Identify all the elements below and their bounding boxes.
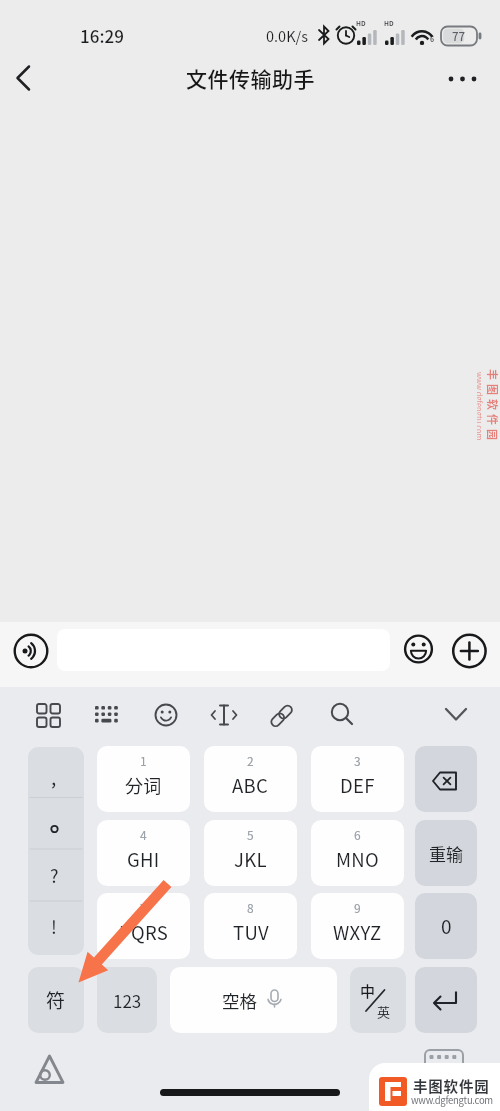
staticText: HD [384, 18, 394, 27]
staticText: 中 [360, 980, 376, 1002]
button[interactable] [404, 634, 436, 666]
staticText: 3 [354, 752, 361, 769]
staticText: MNO [336, 846, 380, 873]
staticText: 符 [46, 986, 66, 1014]
staticText: 8 [247, 899, 254, 916]
staticText: 123 [113, 988, 142, 1013]
staticText: JKL [234, 846, 267, 873]
staticText: TUV [233, 919, 269, 946]
button[interactable] [148, 697, 188, 733]
button[interactable] [97, 820, 190, 886]
button[interactable] [86, 697, 126, 733]
staticText: HD [356, 18, 366, 27]
staticText: 重输 [429, 841, 463, 866]
button[interactable] [311, 893, 404, 959]
button[interactable] [8, 60, 48, 96]
button[interactable] [204, 893, 297, 959]
staticText: ABC [232, 772, 269, 799]
button[interactable] [415, 746, 477, 812]
staticText: PQRS [119, 919, 169, 946]
staticText: 7 [140, 899, 147, 916]
button[interactable] [97, 967, 157, 1033]
button[interactable] [438, 60, 486, 96]
staticText: 英 [377, 1002, 391, 1021]
button[interactable] [97, 746, 190, 812]
staticText: www.dgfengtu.com [411, 1093, 493, 1107]
button[interactable] [311, 746, 404, 812]
staticText: 9 [354, 899, 361, 916]
staticText: 77 [452, 28, 466, 45]
staticText: 16:29 [80, 23, 124, 47]
button[interactable] [28, 747, 84, 955]
button[interactable] [28, 697, 68, 733]
button[interactable] [323, 697, 363, 733]
staticText: DEF [340, 772, 375, 799]
button[interactable] [204, 746, 297, 812]
button[interactable] [436, 697, 480, 733]
staticText: 0.0K/s [266, 25, 308, 45]
staticText: ? [50, 862, 59, 888]
staticText: 分词 [125, 772, 162, 798]
staticText: GHI [127, 846, 160, 873]
staticText: 文件传输助手 [186, 63, 315, 93]
button[interactable] [14, 634, 46, 666]
staticText: 空格 [222, 988, 257, 1013]
staticText: 2 [247, 752, 254, 769]
staticText: 0 [441, 912, 452, 940]
staticText: 丰图软件园 [413, 1075, 490, 1095]
button[interactable] [415, 893, 477, 959]
button[interactable] [28, 967, 84, 1033]
button[interactable] [263, 697, 303, 733]
staticText: 丰图软件园 [485, 369, 500, 444]
button[interactable] [97, 893, 190, 959]
staticText: 6 [430, 34, 435, 44]
button[interactable] [350, 967, 406, 1033]
button[interactable] [170, 967, 337, 1033]
staticText: www.dgfengtu.com [477, 372, 485, 441]
button[interactable] [204, 820, 297, 886]
staticText: 6 [354, 826, 361, 843]
staticText: 1 [140, 752, 147, 769]
staticText: ! [51, 913, 57, 939]
staticText: WXYZ [333, 919, 382, 946]
staticText: 4 [140, 826, 147, 843]
button[interactable] [415, 967, 477, 1033]
button[interactable] [311, 820, 404, 886]
staticText: 5 [247, 826, 254, 843]
button[interactable] [205, 697, 245, 733]
button[interactable] [452, 633, 486, 667]
staticText: , [51, 763, 57, 791]
button[interactable] [415, 820, 477, 886]
